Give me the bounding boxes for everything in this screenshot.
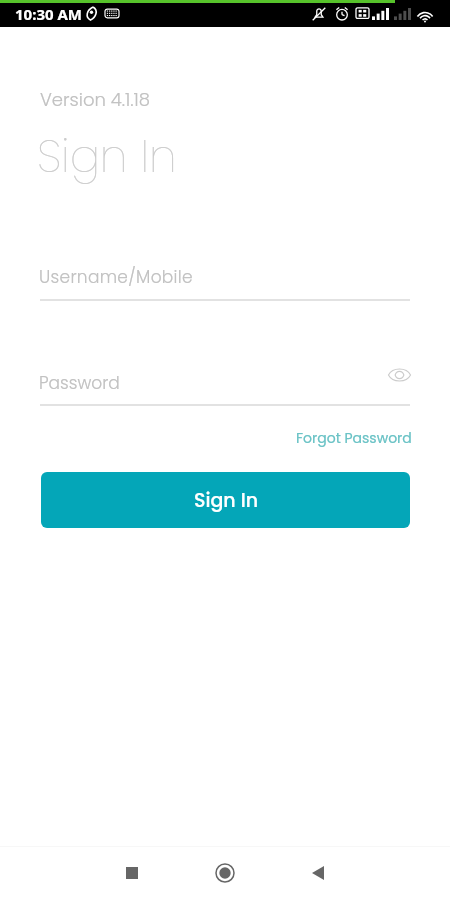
button[interactable]: Sign In [41, 472, 410, 528]
staticText: Forgot Password [296, 428, 412, 448]
button[interactable]: Show password [382, 358, 416, 392]
staticText: Sign In [194, 487, 258, 514]
button[interactable]: Back [294, 849, 342, 897]
staticText: Sign In [37, 125, 177, 188]
button[interactable]: Home [201, 849, 249, 897]
button[interactable]: Recents [108, 849, 156, 897]
button[interactable]: Forgot Password [278, 428, 412, 448]
staticText: Version 4.1.18 [40, 87, 151, 112]
staticText: Password [39, 371, 120, 395]
staticText: 10:30 AM [15, 4, 82, 24]
staticText: Username/Mobile [39, 265, 193, 289]
